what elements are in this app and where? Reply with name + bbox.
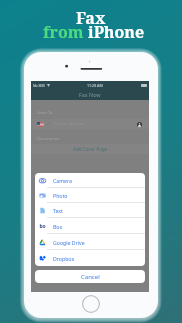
staticText: No SIM bbox=[33, 83, 45, 88]
staticText: Box bbox=[53, 223, 63, 230]
staticText: iPhone bbox=[88, 21, 145, 43]
staticText: +1 bbox=[46, 121, 51, 127]
staticText: from bbox=[43, 21, 88, 43]
staticText: Documents bbox=[37, 136, 60, 142]
staticText: Text bbox=[53, 207, 63, 214]
staticText: Camera bbox=[53, 177, 72, 184]
button[interactable]: Cancel bbox=[35, 270, 145, 283]
staticText: Dropbox bbox=[53, 255, 75, 262]
staticText: box bbox=[39, 223, 46, 230]
staticText: Google Drive bbox=[53, 239, 85, 246]
staticText: Fax Now bbox=[79, 91, 101, 98]
staticText: Send To bbox=[37, 110, 53, 116]
button[interactable]: Contacts bbox=[137, 122, 142, 127]
button[interactable]: +1 bbox=[31, 119, 149, 129]
staticText: Photo bbox=[53, 192, 68, 199]
button[interactable]: Add Cover Page bbox=[31, 144, 149, 154]
staticText: 11:28 AM bbox=[87, 83, 103, 88]
button[interactable]: Dropbox bbox=[35, 250, 145, 266]
button[interactable]: Camera bbox=[35, 173, 145, 188]
button[interactable]: Photo bbox=[35, 188, 145, 203]
staticText: Add Cover Page bbox=[73, 146, 108, 152]
button[interactable]: Text bbox=[35, 203, 145, 218]
staticText: Cancel bbox=[81, 273, 100, 281]
button[interactable]: box bbox=[35, 218, 145, 234]
button[interactable]: Google Drive bbox=[35, 234, 145, 250]
staticText: Phone Number bbox=[55, 121, 86, 127]
staticText: Fax bbox=[76, 7, 106, 29]
